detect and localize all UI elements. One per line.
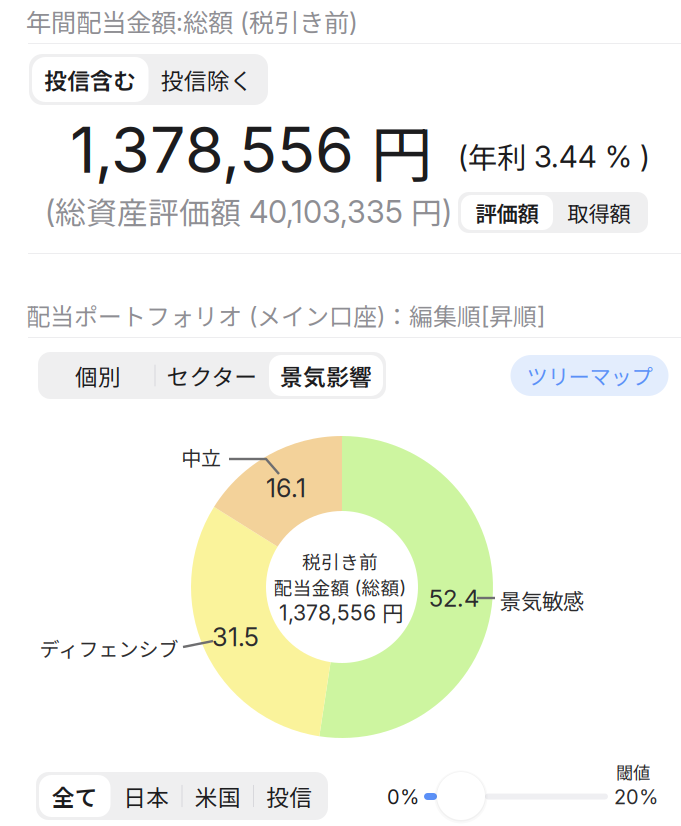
button[interactable]: 投信除く <box>148 57 265 102</box>
staticText: 投信 <box>266 780 312 812</box>
staticText: 個別 <box>75 359 121 391</box>
staticText: 投信含む <box>44 63 136 95</box>
staticText: 1,378,556 円 <box>279 597 403 627</box>
staticText: 取得額 <box>567 197 630 227</box>
button[interactable]: 米国 <box>182 775 253 817</box>
staticText: ディフェンシブ <box>39 634 178 662</box>
staticText: 中立 <box>181 443 221 471</box>
button[interactable]: 評価額 <box>461 195 553 230</box>
staticText: 52.4 <box>429 584 479 612</box>
staticText: 配当金額 (総額) <box>273 574 406 600</box>
staticText: 投信除く <box>161 63 253 95</box>
staticText: 日本 <box>123 780 169 812</box>
staticText: 年間配当金額:総額 (税引き前) <box>26 3 358 39</box>
button[interactable]: 個別 <box>41 355 155 396</box>
staticText: 0% <box>387 785 419 809</box>
button[interactable]: 取得額 <box>553 195 645 230</box>
staticText: 景気影響 <box>280 359 372 391</box>
button[interactable]: ツリーマップ <box>510 355 668 396</box>
staticText: 1,378,556 <box>70 113 354 187</box>
button[interactable]: 日本 <box>110 775 182 817</box>
staticText: 20% <box>614 785 658 809</box>
staticText: 評価額 <box>475 197 538 227</box>
staticText: (総資産評価額 40,103,335 円) <box>45 189 452 233</box>
staticText: 31.5 <box>212 622 259 652</box>
button[interactable]: 景気影響 <box>269 355 383 396</box>
staticText: ツリーマップ <box>526 360 652 390</box>
staticText: 配当ポートフォリオ (メイン口座)：編集順[昇順] <box>26 298 545 332</box>
staticText: セクター <box>166 359 257 391</box>
staticText: (年利 3.44 % ) <box>458 135 650 177</box>
staticText: 税引き前 <box>302 548 378 574</box>
button[interactable]: 全て <box>39 775 110 817</box>
staticText: 景気敏感 <box>500 585 584 615</box>
staticText: 全て <box>52 780 98 812</box>
button[interactable]: 投信 <box>253 775 325 817</box>
staticText: 閾値 <box>616 760 650 784</box>
button[interactable]: セクター <box>155 355 269 396</box>
staticText: 米国 <box>195 780 241 812</box>
button[interactable]: 投信含む <box>32 57 148 102</box>
staticText: 円 <box>371 107 432 193</box>
staticText: 16.1 <box>266 473 306 503</box>
